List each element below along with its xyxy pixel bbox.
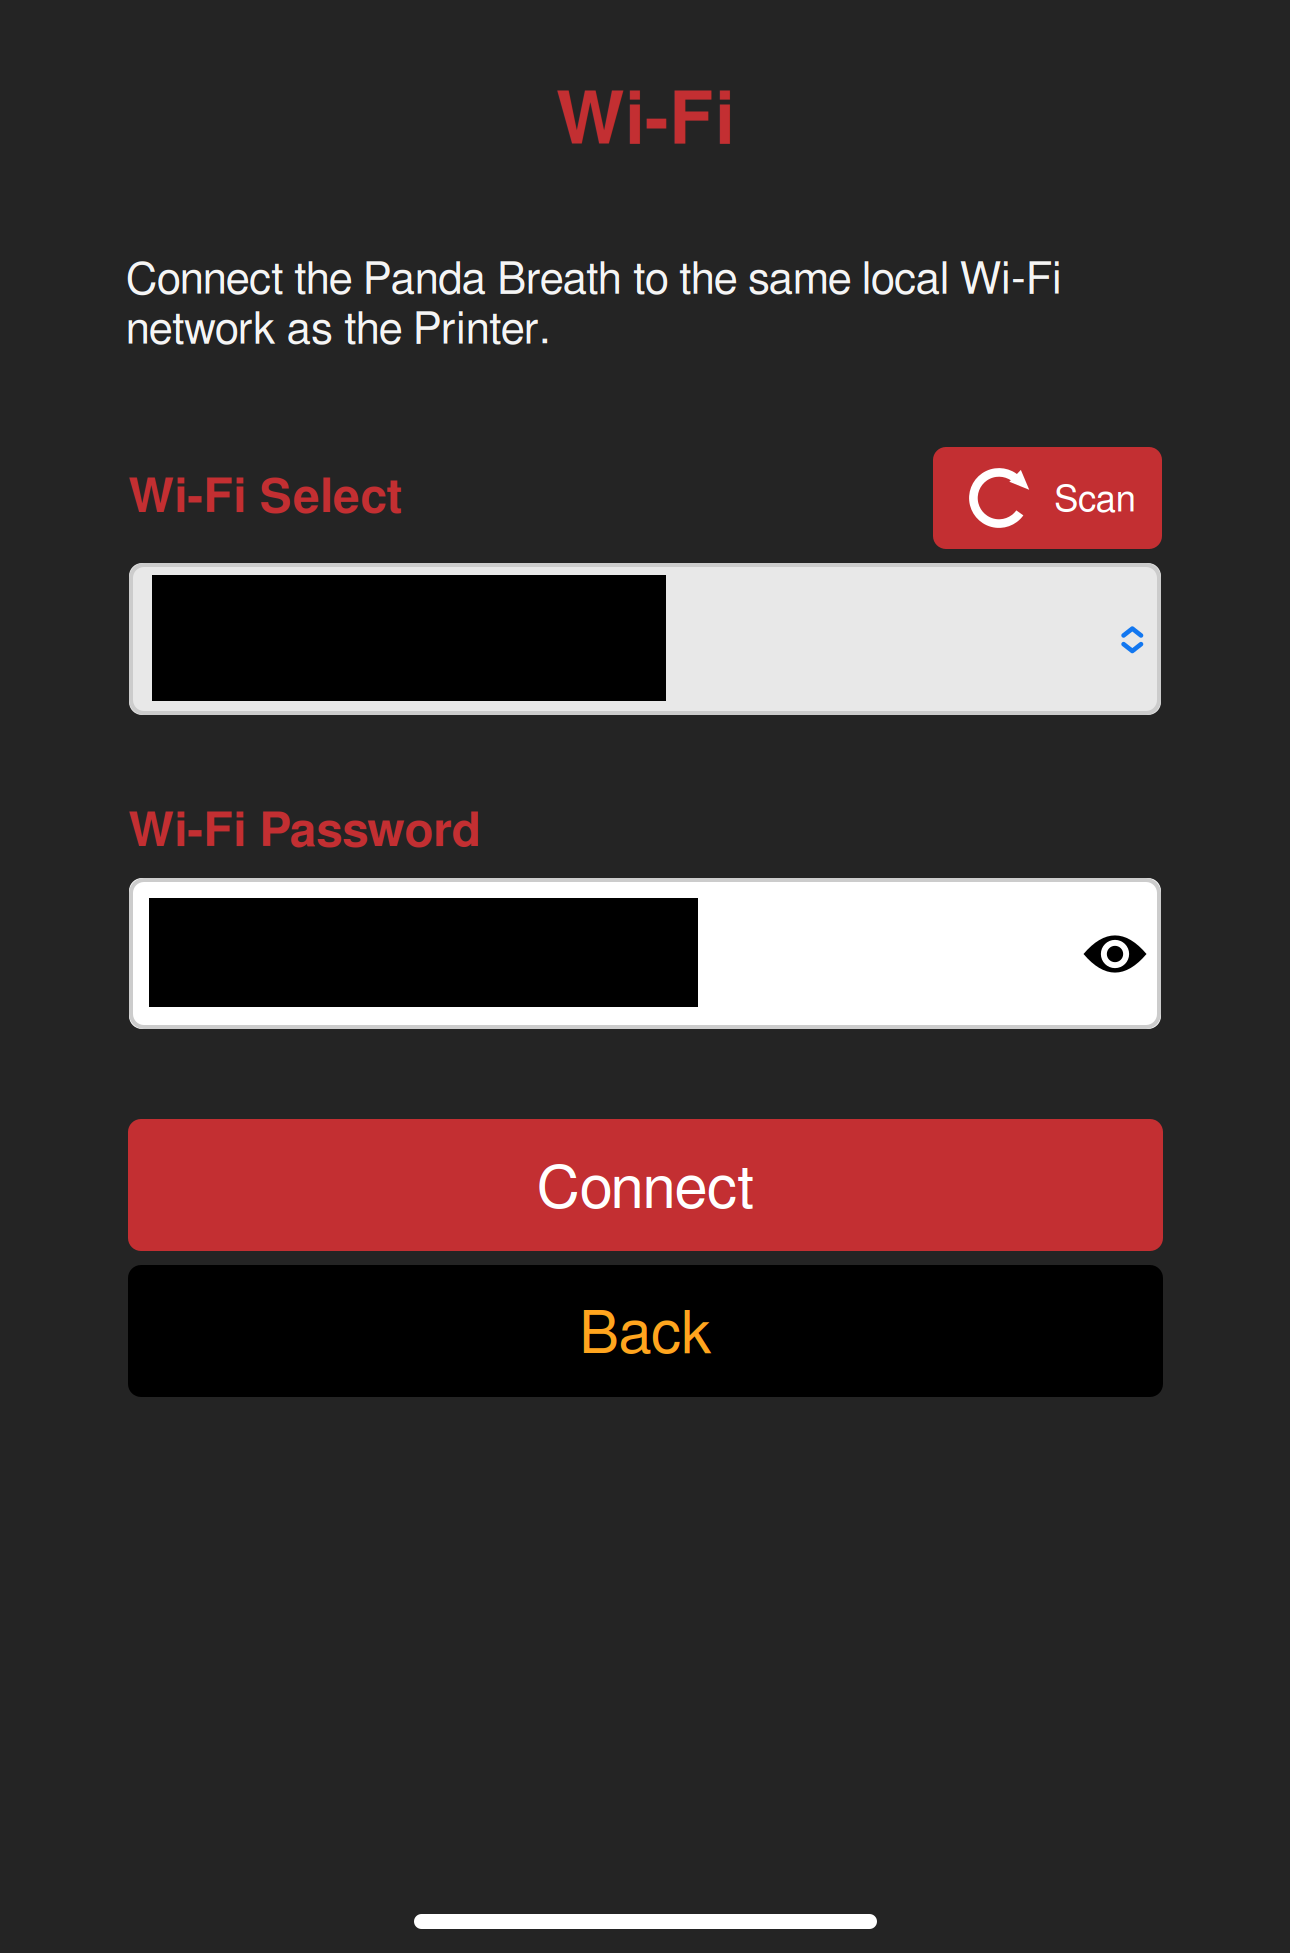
button[interactable]: Back: [128, 1265, 1163, 1397]
staticText: Back: [579, 1305, 712, 1365]
staticText: Wi-Fi: [555, 86, 734, 158]
staticText: Connect the Panda Breath to the same loc…: [126, 258, 1062, 352]
button[interactable]: Wi-Fi network: [129, 563, 1161, 715]
staticText: Wi-Fi Password: [128, 808, 481, 856]
staticText: Connect: [537, 1160, 754, 1220]
staticText: Wi-Fi Select: [128, 474, 402, 522]
button[interactable]: Connect: [128, 1119, 1163, 1251]
button[interactable]: Scan: [933, 447, 1162, 549]
staticText: Scan: [1054, 482, 1136, 518]
button[interactable]: Show password: [1065, 904, 1165, 1004]
